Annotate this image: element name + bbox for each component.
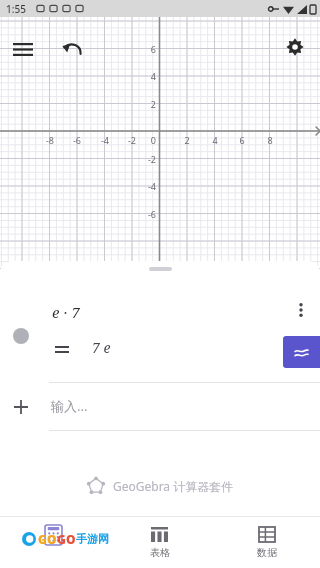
staticText: -4 (91, 134, 119, 146)
staticText: -2 (134, 153, 156, 165)
staticText: 7 e (92, 338, 111, 357)
staticText: -2 (118, 134, 146, 146)
staticText: e · 7 (52, 302, 80, 322)
button[interactable]: Calculator (0, 517, 106, 568)
staticText: -6 (134, 208, 156, 220)
staticText: 手游网 (76, 532, 109, 546)
staticText: 输入... (51, 397, 88, 415)
staticText: GO (57, 531, 76, 547)
staticText: 6 (228, 134, 256, 146)
staticText: 2 (134, 98, 156, 110)
staticText: 表格 (150, 546, 170, 559)
staticText: 6 (134, 43, 156, 55)
button[interactable]: Undo (55, 32, 89, 66)
staticText: 4 (201, 134, 229, 146)
staticText: -4 (134, 180, 156, 192)
button[interactable]: 输入... (0, 383, 320, 431)
staticText: 2 (173, 134, 201, 146)
staticText: 8 (256, 134, 284, 146)
button[interactable]: Approximate (283, 336, 320, 368)
staticText: GO (38, 531, 57, 547)
staticText: 1:55 (6, 2, 26, 16)
staticText: 数据 (257, 546, 277, 559)
button[interactable]: 表格 (106, 517, 213, 568)
button[interactable]: 数据 (213, 517, 320, 568)
button[interactable]: More options (288, 297, 314, 323)
staticText: 4 (134, 70, 156, 82)
staticText: GeoGebra 计算器套件 (113, 478, 234, 494)
staticText: 0 (138, 134, 156, 146)
staticText: -8 (36, 134, 64, 146)
button[interactable]: Settings (278, 30, 312, 64)
button[interactable]: Menu (6, 32, 40, 66)
button[interactable]: Toggle visibility (0, 275, 320, 383)
button[interactable]: Toggle visibility (13, 328, 29, 344)
staticText: -6 (63, 134, 91, 146)
